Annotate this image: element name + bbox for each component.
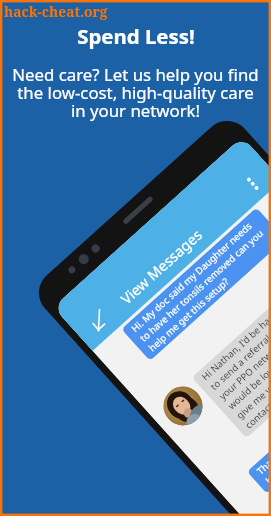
button[interactable]: Back — [81, 303, 115, 337]
staticText: View Messages — [116, 224, 206, 308]
button[interactable]: Hi Nathan, I'd be happy to send a referr… — [199, 297, 271, 431]
staticText: hack-cheat.org — [4, 2, 108, 21]
button[interactable]: Hi. My doc said my Daughter needs to hav… — [128, 214, 271, 354]
button[interactable]: Thank you so much, that is very helpful! — [254, 357, 271, 487]
button[interactable]: More options — [239, 170, 267, 198]
staticText: Hi Nathan, I'd be happy to send a referr… — [199, 297, 271, 431]
staticText: Hi. My doc said my Daughter needs to hav… — [128, 214, 271, 354]
staticText: Need care? Let us help you find the low-… — [12, 63, 259, 122]
staticText: Thank you so much, that is very helpful! — [254, 357, 271, 487]
staticText: Spend Less! — [77, 22, 195, 50]
